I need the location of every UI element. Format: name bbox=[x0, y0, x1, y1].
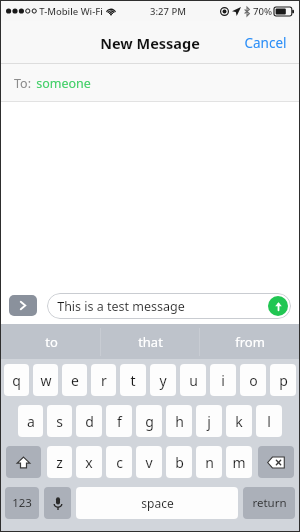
staticText: z bbox=[56, 453, 63, 472]
staticText: g bbox=[145, 412, 154, 431]
staticText: to bbox=[45, 333, 58, 351]
button[interactable]: x bbox=[76, 446, 102, 478]
staticText: h bbox=[175, 412, 184, 431]
staticText: y bbox=[159, 371, 167, 390]
staticText: To: bbox=[14, 75, 31, 92]
button[interactable]: a bbox=[18, 405, 43, 437]
staticText: r bbox=[101, 371, 107, 390]
staticText: m bbox=[232, 453, 246, 472]
staticText: b bbox=[175, 453, 184, 472]
button[interactable]: Send bbox=[268, 296, 288, 316]
staticText: c bbox=[116, 453, 123, 472]
button[interactable]: w bbox=[33, 364, 58, 396]
button[interactable]: s bbox=[47, 405, 72, 437]
button[interactable]: 123 bbox=[5, 487, 39, 519]
staticText: return bbox=[252, 495, 287, 511]
staticText: i bbox=[221, 371, 225, 390]
button[interactable]: Backspace bbox=[258, 446, 294, 478]
button[interactable]: f bbox=[106, 405, 132, 437]
staticText: 3:27 PM bbox=[150, 5, 186, 18]
button[interactable]: space bbox=[76, 487, 238, 519]
button[interactable]: n bbox=[196, 446, 222, 478]
staticText: 70% bbox=[253, 5, 272, 18]
button[interactable]: r bbox=[91, 364, 116, 396]
button[interactable]: j bbox=[196, 405, 222, 437]
staticText: This is a test message bbox=[57, 298, 185, 315]
staticText: a bbox=[27, 412, 35, 431]
button[interactable]: h bbox=[166, 405, 192, 437]
staticText: u bbox=[189, 371, 198, 390]
staticText: from bbox=[235, 333, 265, 351]
staticText: someone bbox=[36, 75, 91, 92]
button[interactable]: l bbox=[256, 405, 282, 437]
button[interactable]: that bbox=[101, 324, 200, 359]
button[interactable]: y bbox=[150, 364, 176, 396]
staticText: k bbox=[235, 412, 243, 431]
button[interactable]: b bbox=[166, 446, 192, 478]
staticText: T-Mobile Wi-Fi bbox=[39, 5, 103, 18]
staticText: j bbox=[207, 412, 211, 431]
staticText: q bbox=[12, 371, 21, 390]
button[interactable]: m bbox=[226, 446, 252, 478]
button[interactable]: p bbox=[270, 364, 296, 396]
button[interactable]: u bbox=[180, 364, 206, 396]
button[interactable]: e bbox=[62, 364, 87, 396]
button[interactable]: z bbox=[47, 446, 72, 478]
staticText: Cancel bbox=[244, 34, 287, 52]
button[interactable]: v bbox=[136, 446, 162, 478]
button[interactable]: t bbox=[120, 364, 146, 396]
staticText: n bbox=[205, 453, 214, 472]
button[interactable]: More options bbox=[9, 295, 37, 316]
button[interactable]: This is a test message bbox=[47, 293, 291, 319]
staticText: f bbox=[117, 412, 122, 431]
button[interactable]: Cancel bbox=[232, 24, 299, 62]
button[interactable]: c bbox=[106, 446, 132, 478]
staticText: d bbox=[85, 412, 94, 431]
staticText: w bbox=[40, 371, 52, 390]
staticText: t bbox=[130, 371, 136, 390]
staticText: l bbox=[267, 412, 271, 431]
staticText: v bbox=[145, 453, 153, 472]
button[interactable]: q bbox=[4, 364, 29, 396]
staticText: x bbox=[85, 453, 93, 472]
button[interactable]: i bbox=[210, 364, 236, 396]
staticText: that bbox=[138, 333, 163, 351]
button[interactable]: Shift bbox=[6, 446, 41, 478]
button[interactable]: o bbox=[240, 364, 266, 396]
staticText: space bbox=[141, 495, 174, 511]
button[interactable]: from bbox=[200, 324, 299, 359]
button[interactable]: to bbox=[1, 324, 101, 359]
staticText: New Message bbox=[100, 33, 200, 53]
button[interactable]: d bbox=[76, 405, 102, 437]
staticText: s bbox=[56, 412, 63, 431]
staticText: o bbox=[249, 371, 258, 390]
staticText: 123 bbox=[12, 495, 32, 511]
staticText: p bbox=[279, 371, 288, 390]
button[interactable]: To: bbox=[1, 64, 299, 102]
button[interactable]: return bbox=[243, 487, 295, 519]
button[interactable]: k bbox=[226, 405, 252, 437]
staticText: e bbox=[71, 371, 79, 390]
button[interactable]: g bbox=[136, 405, 162, 437]
button[interactable]: Dictate bbox=[44, 487, 71, 519]
